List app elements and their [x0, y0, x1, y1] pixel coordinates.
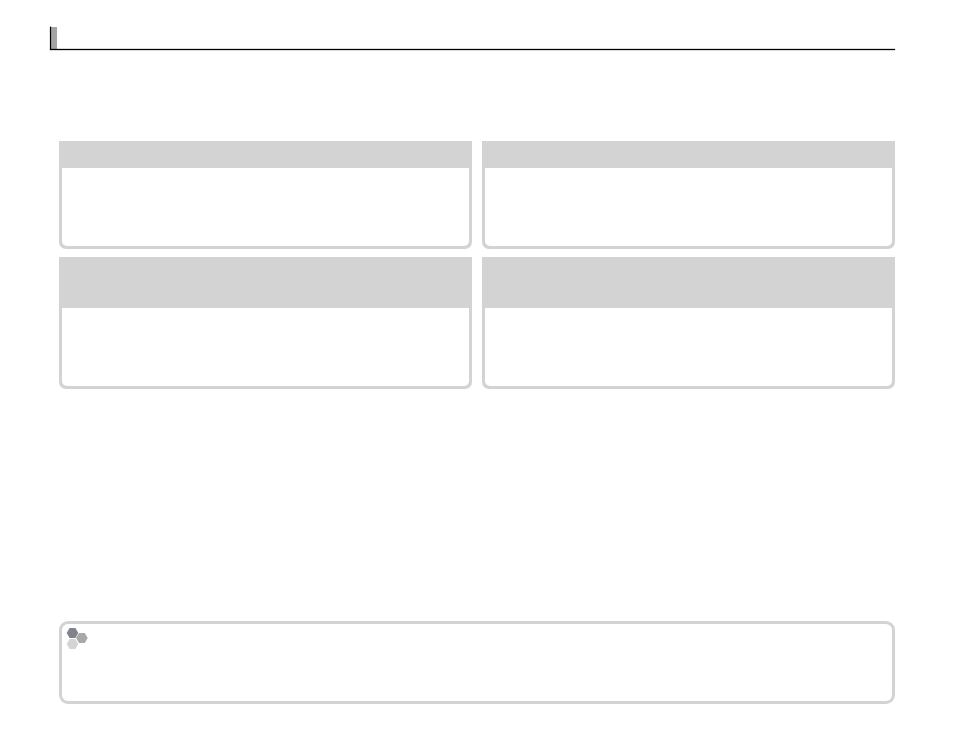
button[interactable]: Panel 4 [482, 257, 895, 389]
button[interactable]: Panel 2 [482, 141, 895, 249]
other: App logo [67, 629, 93, 655]
button[interactable]: Panel 1 [59, 141, 472, 249]
button[interactable]: Panel 3 [59, 257, 472, 389]
button[interactable]: Footer card [62, 624, 892, 701]
button[interactable]: Selected tab [51, 27, 57, 49]
